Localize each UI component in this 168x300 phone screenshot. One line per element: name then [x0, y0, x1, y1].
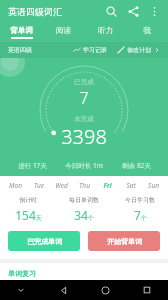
staticText: 今日学习数 [125, 196, 155, 204]
button[interactable]: 听力 [84, 22, 126, 42]
button[interactable]: 已完成单词 [8, 231, 80, 251]
staticText: Mon [9, 181, 22, 190]
staticText: 我 [143, 26, 151, 35]
staticText: 7 [79, 87, 89, 109]
button[interactable]: Hide keyboard [0, 280, 42, 300]
staticText: 个 [88, 214, 94, 222]
button[interactable]: Back [42, 280, 84, 300]
staticText: 学习记录 [83, 46, 107, 54]
staticText: 每日单词数 [69, 196, 99, 204]
staticText: 今日时长 1m [65, 161, 103, 170]
staticText: Tue [34, 181, 44, 190]
staticText: 已完成 [74, 78, 94, 86]
staticText: Sat [126, 181, 136, 190]
staticText: 7 [134, 207, 141, 223]
staticText: Fri [103, 181, 112, 190]
staticText: 未完成 [74, 115, 94, 123]
staticText: 单词复习 [8, 269, 36, 278]
staticText: Sun [148, 181, 159, 190]
staticText: 剩余 82天 [122, 161, 151, 170]
staticText: Thu [79, 181, 90, 190]
button[interactable]: Search [100, 0, 122, 22]
staticText: 个 [141, 214, 147, 222]
staticText: Wed [55, 181, 68, 190]
staticText: 3398 [61, 123, 107, 150]
staticText: 阅读 [56, 26, 71, 35]
button[interactable]: 我 [126, 22, 168, 42]
button[interactable]: Share [122, 0, 144, 22]
staticText: 修改计划 [127, 46, 151, 54]
staticText: 天 [36, 214, 42, 222]
button[interactable]: 背单词 [0, 22, 42, 42]
staticText: 34 [74, 207, 88, 223]
button[interactable]: 修改计划 [117, 46, 160, 54]
button[interactable]: Recent apps [126, 280, 168, 300]
staticText: 154 [15, 207, 36, 223]
staticText: 倒计时 [19, 196, 37, 204]
staticText: 开始背单词 [107, 237, 142, 246]
staticText: 进行 17天 [18, 161, 47, 170]
button[interactable]: Home [84, 280, 126, 300]
staticText: 英语四级 [8, 46, 32, 54]
button[interactable]: 学习记录 [73, 46, 107, 54]
button[interactable]: 阅读 [42, 22, 84, 42]
staticText: 背单词 [10, 26, 33, 35]
staticText: 英语四级词汇 [8, 6, 62, 17]
staticText: 已完成单词 [27, 237, 62, 246]
button[interactable]: 开始背单词 [88, 231, 160, 251]
staticText: 听力 [98, 26, 113, 35]
button[interactable]: More options [144, 1, 164, 21]
